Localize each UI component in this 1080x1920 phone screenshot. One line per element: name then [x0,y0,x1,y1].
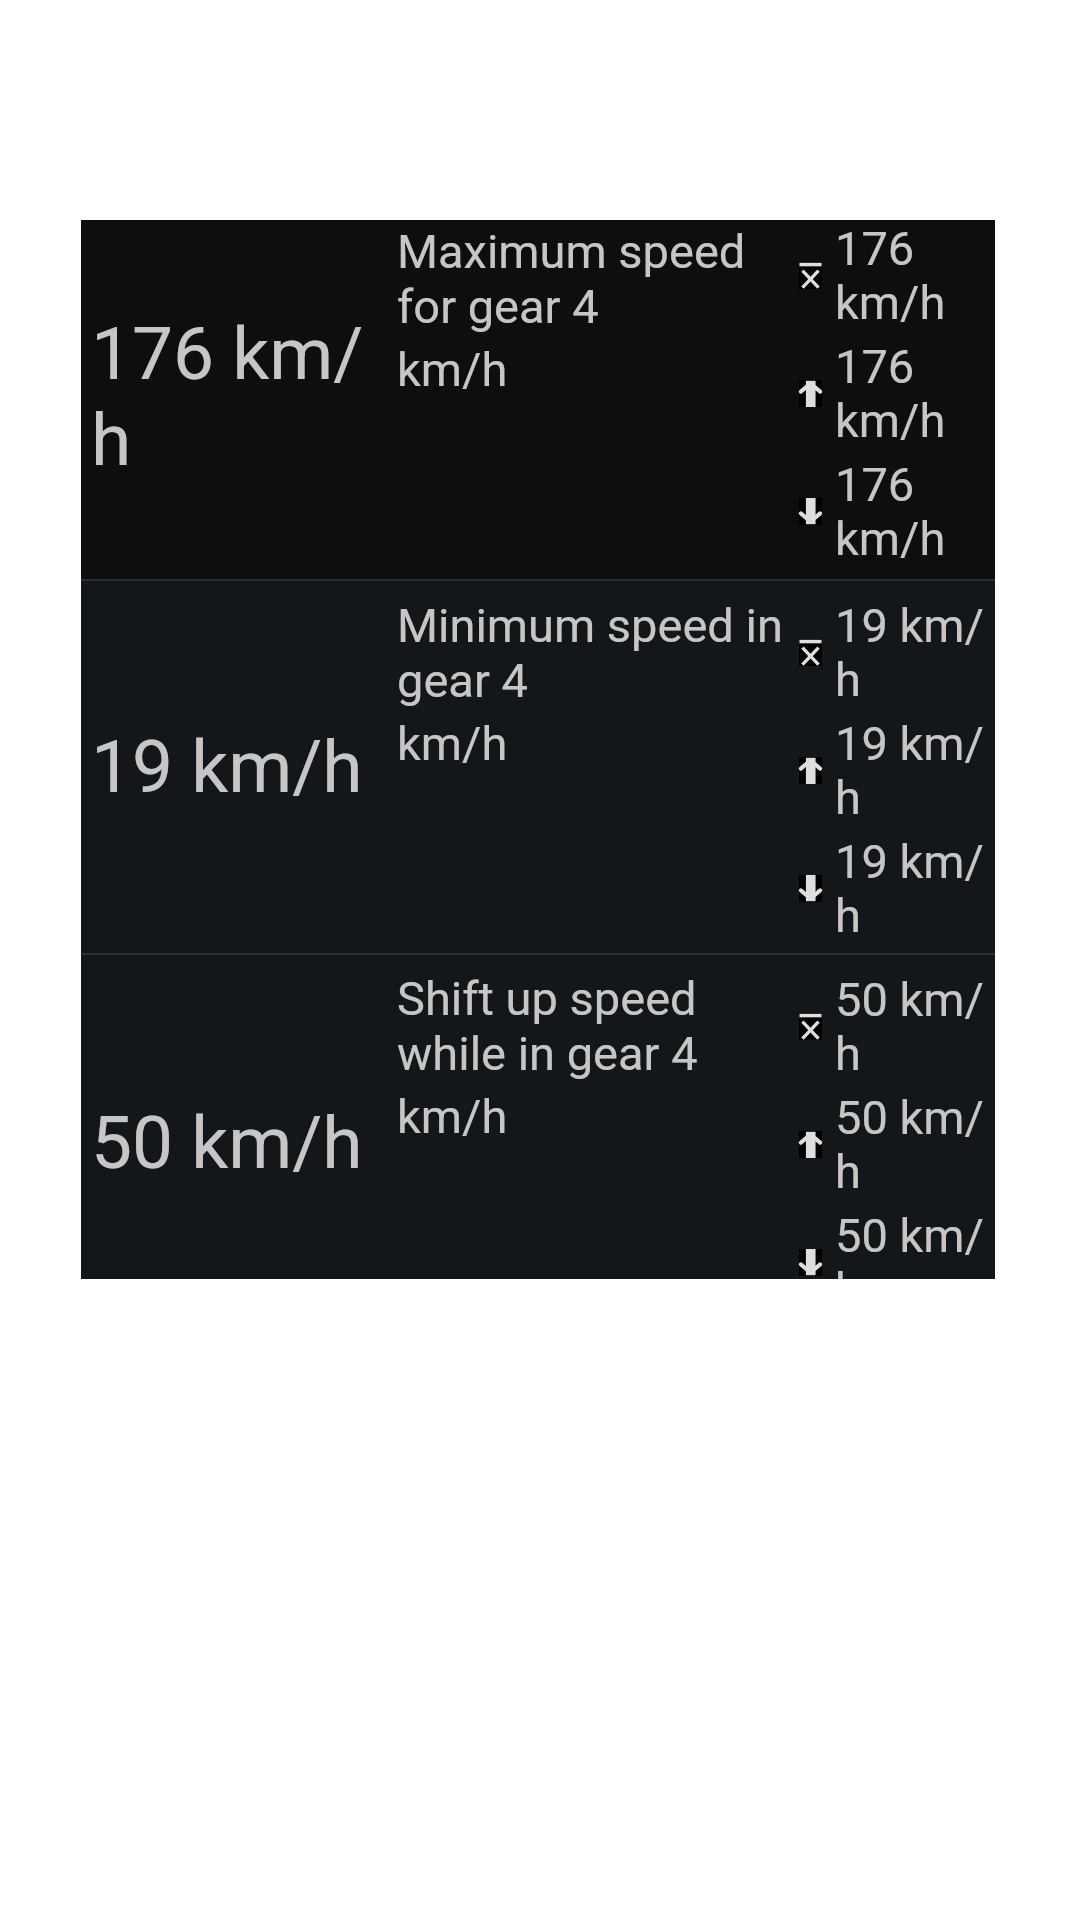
other: Minimum [799,875,822,902]
staticText: 50 km/ h [835,1090,984,1199]
staticText: 176 km/h [835,457,946,566]
other: Minimum [799,1249,822,1276]
staticText: 176 km/ h [91,311,364,483]
staticText: km/h [397,1089,508,1144]
other: Average [799,1013,822,1040]
staticText: 50 km/h [91,1100,363,1186]
button[interactable]: 50 km/h [81,955,995,1279]
staticText: Shift up speed while in gear 4 [397,971,698,1081]
other: Maximum [799,1131,822,1158]
other: Minimum [799,498,822,525]
button[interactable]: 176 km/ h [81,220,995,579]
staticText: km/h [397,716,508,771]
staticText: 19 km/ h [835,834,984,943]
other: Average [799,262,822,289]
staticText: 19 km/ h [835,716,984,825]
staticText: km/h [397,342,508,397]
staticText: 176 km/h [835,339,946,448]
other: Maximum [799,380,822,407]
staticText: Minimum speed in gear 4 [397,598,783,708]
staticText: 50 km/ h [835,972,984,1081]
staticText: 19 km/ h [835,598,984,707]
button[interactable]: 19 km/h [81,581,995,953]
other: Average [799,639,822,666]
staticText: 176 km/h [835,221,946,330]
other: Maximum [799,757,822,784]
staticText: 19 km/h [91,724,363,810]
staticText: 50 km/ h [835,1208,984,1279]
staticText: Maximum speed for gear 4 [397,224,746,334]
